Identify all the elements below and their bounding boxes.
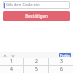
staticText: 3: [60, 58, 63, 65]
button[interactable]: Bestätigen: [3, 11, 70, 21]
staticText: Bestätigen: [25, 13, 48, 19]
button[interactable]: 3: [49, 58, 73, 65]
staticText: 1: [10, 58, 13, 65]
button[interactable]: Next field: [10, 53, 15, 58]
button[interactable]: 4: [0, 66, 23, 73]
button[interactable]: Previous field: [2, 53, 7, 58]
staticText: 4: [10, 66, 13, 73]
button[interactable]: Fertig: [59, 53, 71, 57]
button[interactable]: 2: [24, 58, 48, 65]
button[interactable]: 6: [49, 66, 73, 73]
button[interactable]: Gib den Code ein: [3, 1, 70, 9]
staticText: Fertig: [60, 53, 70, 57]
staticText: 5: [35, 66, 38, 73]
button[interactable]: 5: [24, 66, 48, 73]
button[interactable]: 1: [0, 58, 23, 65]
staticText: Gib den Code ein: [6, 2, 40, 8]
staticText: 2: [35, 58, 38, 65]
staticText: 6: [60, 66, 63, 73]
